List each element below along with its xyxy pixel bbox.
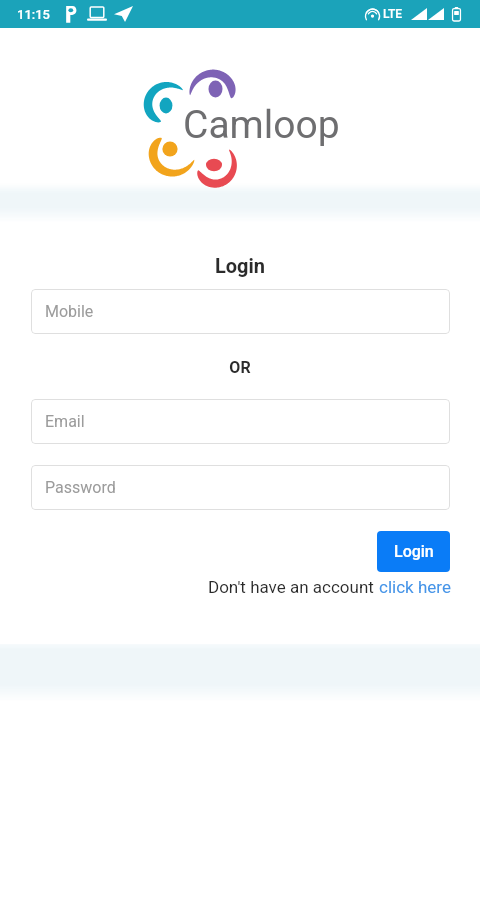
staticText: Email [45, 412, 85, 431]
button[interactable]: Login [377, 531, 450, 572]
button[interactable]: Password [31, 465, 450, 510]
button[interactable]: click here [379, 577, 451, 597]
staticText: Camloop [183, 102, 340, 148]
staticText: OR [0, 358, 480, 377]
button[interactable]: Email [31, 399, 450, 444]
staticText: Password [45, 478, 116, 497]
staticText: 11:15 [17, 7, 50, 22]
staticText: Don't have an account [208, 577, 379, 597]
staticText: Mobile [45, 302, 94, 321]
button[interactable]: Mobile [31, 289, 450, 334]
staticText: LTE [383, 7, 403, 21]
staticText: Login [394, 542, 434, 561]
staticText: Login [0, 254, 480, 277]
